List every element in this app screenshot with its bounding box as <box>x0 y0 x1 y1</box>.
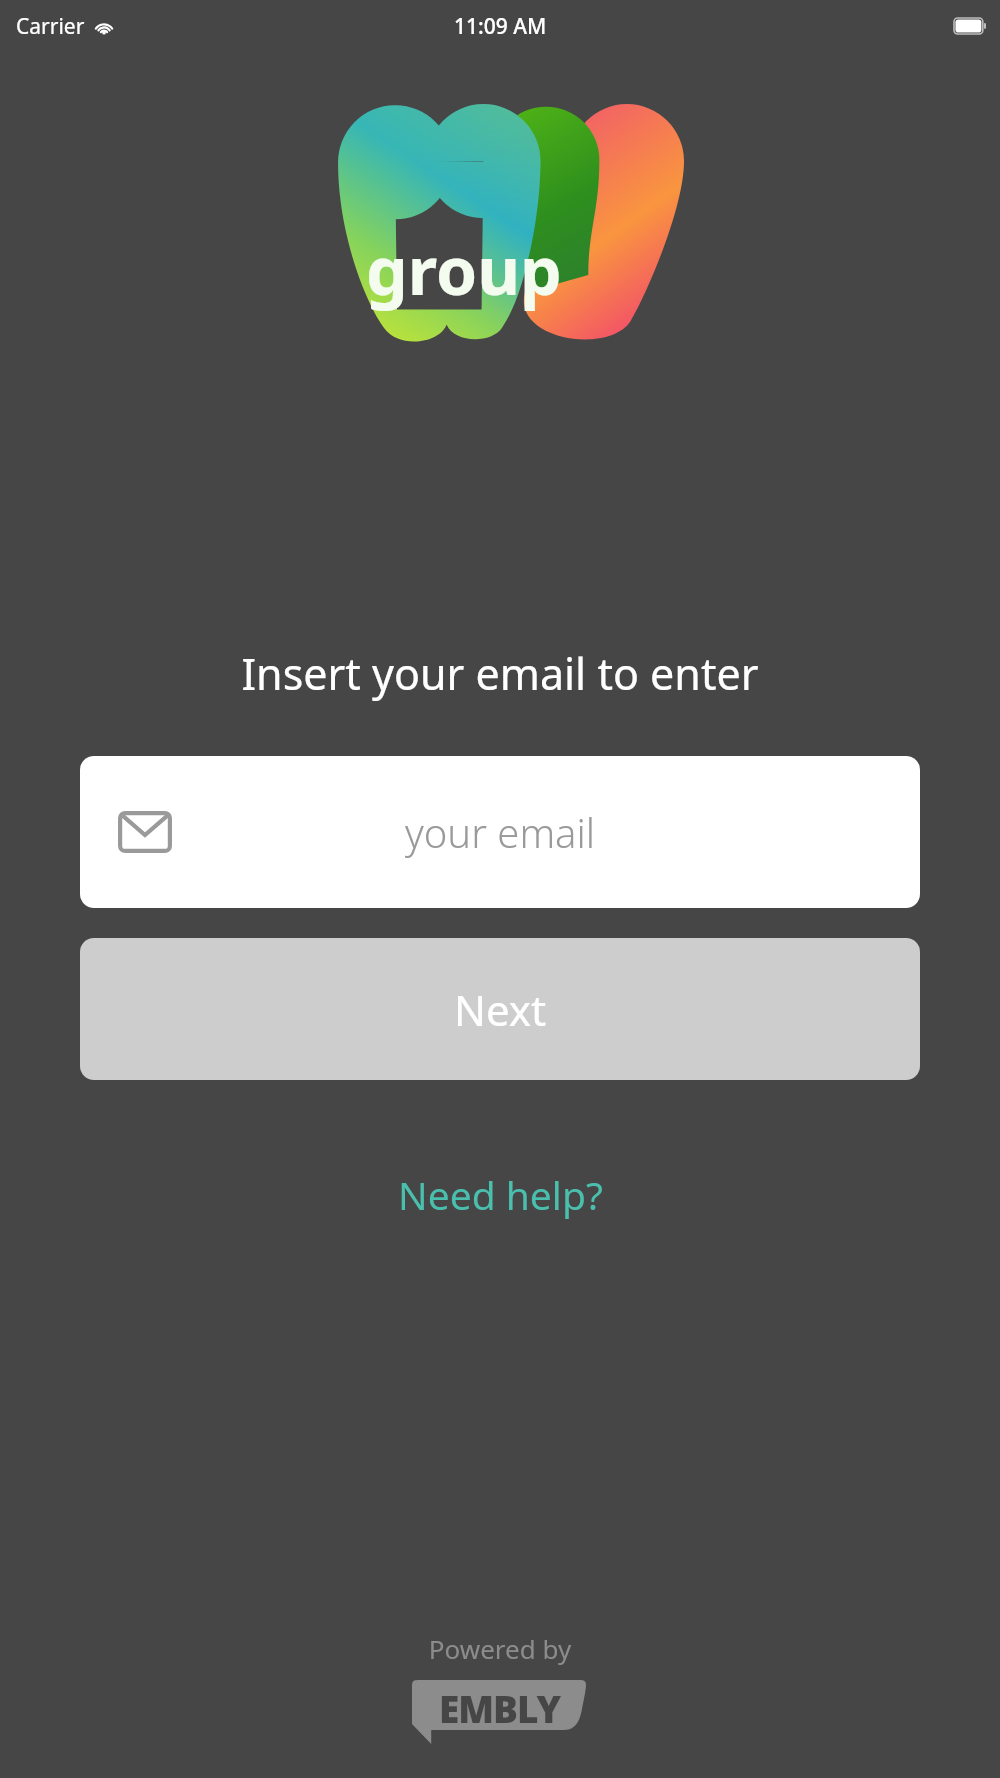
staticText: Carrier <box>16 12 85 41</box>
other: Email <box>118 811 172 853</box>
staticText: Insert your email to enter <box>0 644 1000 703</box>
button[interactable]: Next <box>80 938 920 1080</box>
staticText: Need help? <box>398 1168 603 1221</box>
staticText: EMBLY <box>439 1683 561 1733</box>
staticText: your email <box>405 805 596 859</box>
staticText: Next <box>454 981 547 1038</box>
staticText: group <box>366 224 562 314</box>
staticText: Powered by <box>0 1631 1000 1666</box>
staticText: 11:09 AM <box>454 12 547 41</box>
button[interactable]: Need help? <box>380 1160 621 1229</box>
button[interactable]: Email <box>80 756 920 908</box>
